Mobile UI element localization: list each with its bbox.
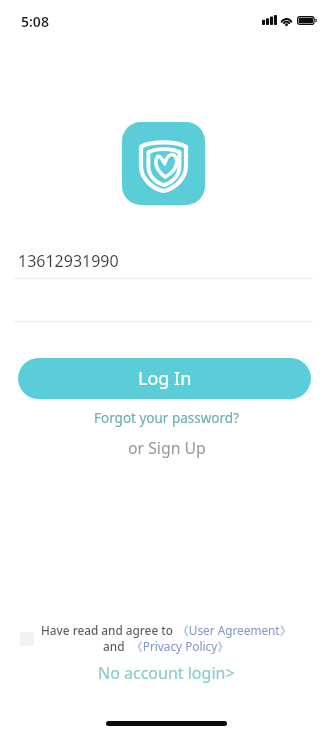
button[interactable]: Forgot your password? [88, 407, 246, 429]
button[interactable]: Log In [18, 358, 311, 399]
staticText: Forgot your password? [94, 409, 240, 427]
staticText: 13612931990 [18, 250, 119, 272]
staticText: 《User Agreement》 [177, 622, 292, 638]
staticText: Have read and agree to [41, 622, 177, 638]
staticText: No account login> [98, 662, 235, 684]
button[interactable]: or Sign Up [122, 435, 212, 461]
staticText: 《Privacy Policy》 [131, 638, 230, 654]
staticText: Log In [138, 366, 192, 391]
button[interactable]: 《User Agreement》 [177, 622, 292, 638]
staticText: or Sign Up [128, 437, 206, 459]
staticText: 5:08 [21, 12, 49, 31]
staticText: and [103, 638, 131, 654]
button[interactable]: 《Privacy Policy》 [131, 638, 230, 654]
button[interactable]: No account login> [92, 660, 241, 686]
